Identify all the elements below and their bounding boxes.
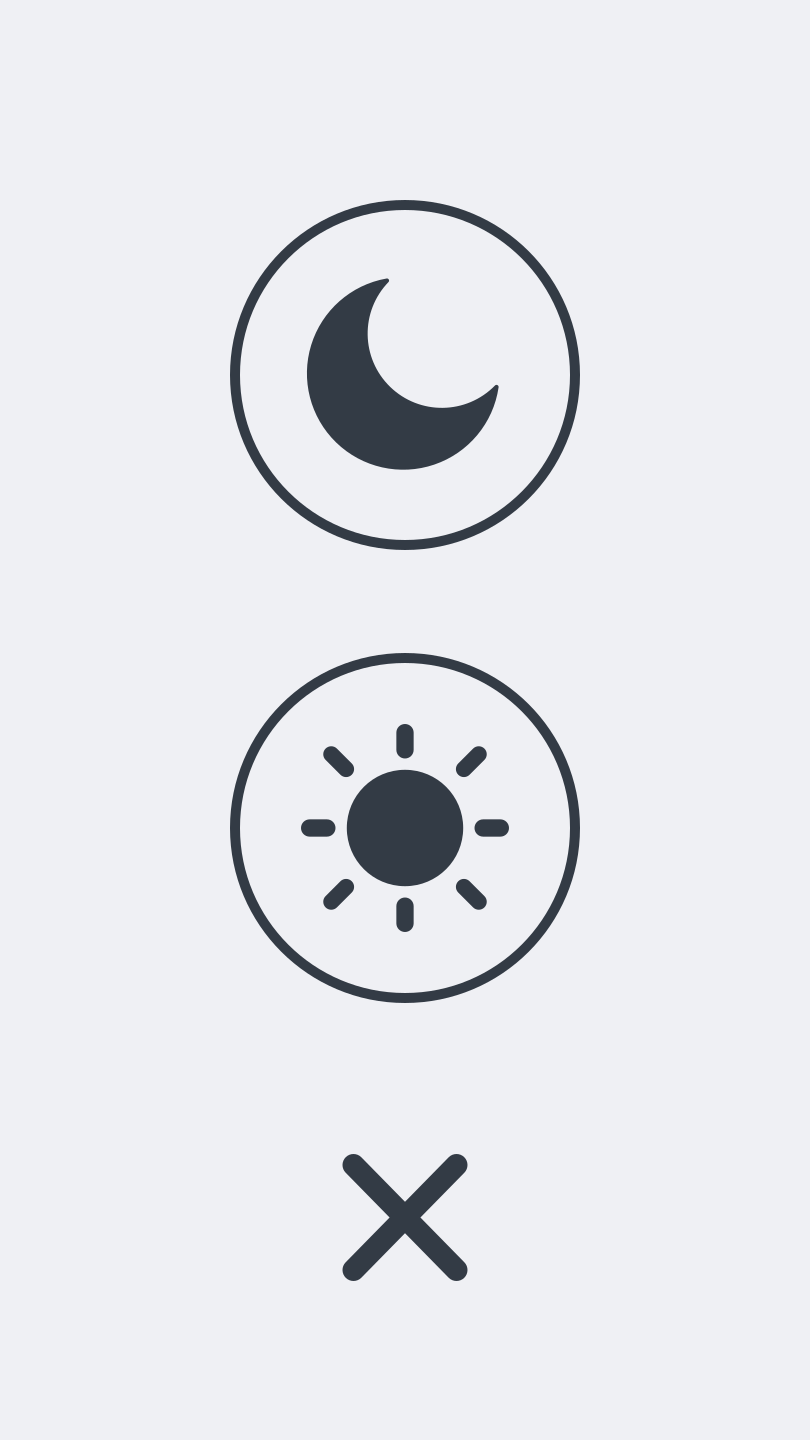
button[interactable]: Dark appearance [230, 200, 580, 550]
button[interactable]: Close [342, 1154, 467, 1281]
button[interactable]: Light appearance [230, 653, 580, 1003]
